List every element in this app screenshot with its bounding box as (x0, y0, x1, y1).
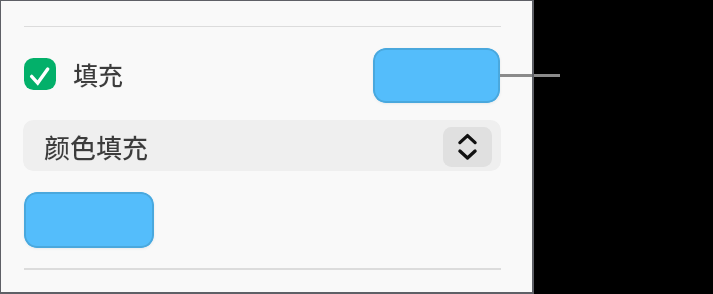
button[interactable]: Colour swatch (24, 192, 154, 248)
staticText: 颜色填充 (44, 128, 149, 166)
button[interactable]: Change value (443, 127, 492, 167)
button[interactable]: 颜色填充 (23, 120, 501, 171)
button[interactable]: Fill colour swatch (373, 48, 500, 103)
staticText: 填充 (73, 56, 124, 88)
button[interactable]: 填充 (24, 58, 124, 90)
